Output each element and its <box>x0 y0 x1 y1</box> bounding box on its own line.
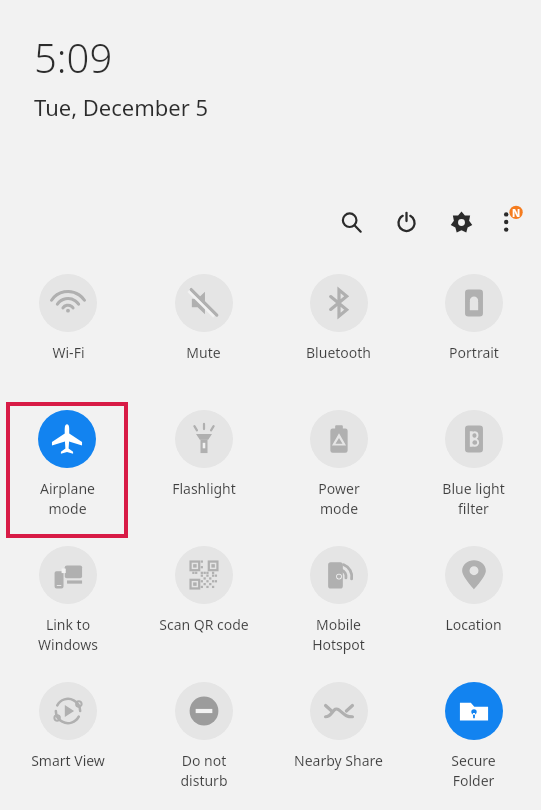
button[interactable]: Link to Windows <box>0 538 136 674</box>
staticText: Scan QR code <box>159 615 249 634</box>
staticText: Location <box>445 615 502 634</box>
staticText: Airplane mode <box>40 479 95 518</box>
button[interactable]: Power off <box>388 204 424 240</box>
staticText: Secure Folder <box>451 751 496 790</box>
staticText: Power mode <box>318 479 360 518</box>
button[interactable]: Nearby Share <box>271 674 406 810</box>
staticText: Blue light filter <box>442 479 505 518</box>
button[interactable]: Flashlight <box>136 402 271 538</box>
staticText: Portrait <box>449 343 499 362</box>
button[interactable]: Blue light filter <box>406 402 541 538</box>
button[interactable]: Portrait <box>406 266 541 402</box>
button[interactable]: Scan QR code <box>136 538 271 674</box>
button[interactable]: More options <box>491 203 529 241</box>
staticText: Tue, December 5 <box>34 92 209 122</box>
staticText: Nearby Share <box>294 751 383 770</box>
button[interactable]: Bluetooth <box>271 266 406 402</box>
button[interactable]: Search <box>333 204 369 240</box>
staticText: Bluetooth <box>306 343 371 362</box>
button[interactable]: Do not disturb <box>136 674 271 810</box>
staticText: Wi-Fi <box>52 343 85 362</box>
button[interactable]: Mute <box>136 266 271 402</box>
button[interactable]: Power mode <box>271 402 406 538</box>
button[interactable]: Wi-Fi <box>0 266 136 402</box>
button[interactable]: Secure Folder <box>406 674 541 810</box>
staticText: Mobile Hotspot <box>312 615 365 654</box>
staticText: N <box>512 206 521 220</box>
staticText: Link to Windows <box>38 615 98 654</box>
staticText: 5:09 <box>34 30 113 84</box>
button[interactable]: Smart View <box>0 674 136 810</box>
staticText: Do not disturb <box>180 751 228 790</box>
button[interactable]: Airplane mode <box>10 406 124 534</box>
button[interactable]: Settings <box>443 204 479 240</box>
button[interactable]: Mobile Hotspot <box>271 538 406 674</box>
button[interactable]: Location <box>406 538 541 674</box>
staticText: Smart View <box>31 751 105 770</box>
staticText: Mute <box>186 343 221 362</box>
staticText: Flashlight <box>172 479 236 498</box>
